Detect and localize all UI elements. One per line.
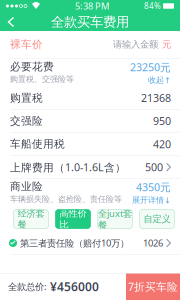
- staticText: 高性价比: [59, 207, 86, 230]
- staticText: 请输入金额: [113, 39, 158, 50]
- button[interactable]: 自定义: [139, 209, 174, 228]
- button[interactable]: 上牌费用（1.0-1.6L含）: [0, 156, 180, 178]
- staticText: 购置税、交强险等: [10, 74, 74, 84]
- staticText: 经济套餐: [17, 207, 44, 230]
- staticText: 5:38 PM: [75, 0, 109, 12]
- button[interactable]: 第三者责任险（赔付10万）: [0, 232, 180, 254]
- staticText: ¥456000: [50, 278, 99, 294]
- staticText: 84%: [144, 1, 161, 11]
- staticText: 收起↑: [148, 75, 171, 85]
- staticText: 交强险: [10, 114, 43, 127]
- staticText: 全款总价:: [8, 280, 47, 293]
- staticText: 21368: [141, 91, 171, 105]
- staticText: 950: [153, 114, 171, 128]
- staticText: 裸车价: [10, 38, 43, 51]
- staticText: 必要花费: [10, 60, 54, 73]
- staticText: 购置税: [10, 91, 43, 104]
- staticText: 420: [153, 137, 171, 151]
- button[interactable]: 交强险: [0, 110, 180, 132]
- staticText: 第三者责任险（赔付10万）: [20, 237, 129, 249]
- button[interactable]: Back: [0, 12, 22, 31]
- staticText: 全juxt套餐: [98, 207, 132, 231]
- button[interactable]: 7折买车险: [126, 273, 180, 300]
- staticText: 4350元: [136, 180, 171, 194]
- staticText: 商业险: [10, 180, 43, 193]
- staticText: 23250元: [130, 60, 171, 74]
- staticText: 500: [145, 160, 163, 174]
- staticText: 自定义: [143, 213, 170, 225]
- staticText: 7折买车险: [128, 279, 178, 294]
- button[interactable]: 购置税: [0, 87, 180, 109]
- staticText: 车船使用税: [10, 137, 65, 151]
- staticText: 上牌费用（1.0-1.6L含）: [10, 160, 126, 174]
- staticText: 全款买车费用: [51, 14, 129, 30]
- button[interactable]: 车船使用税: [0, 133, 180, 155]
- staticText: 车辆损失险、盗抢险、责任险等: [10, 194, 122, 204]
- staticText: 1026: [143, 237, 163, 249]
- staticText: 元: [162, 39, 171, 50]
- button[interactable]: 全juxt套餐: [97, 209, 132, 228]
- staticText: 展开详情↓: [132, 195, 171, 205]
- button[interactable]: 高性价比: [55, 209, 90, 228]
- button[interactable]: 经济套餐: [13, 209, 48, 228]
